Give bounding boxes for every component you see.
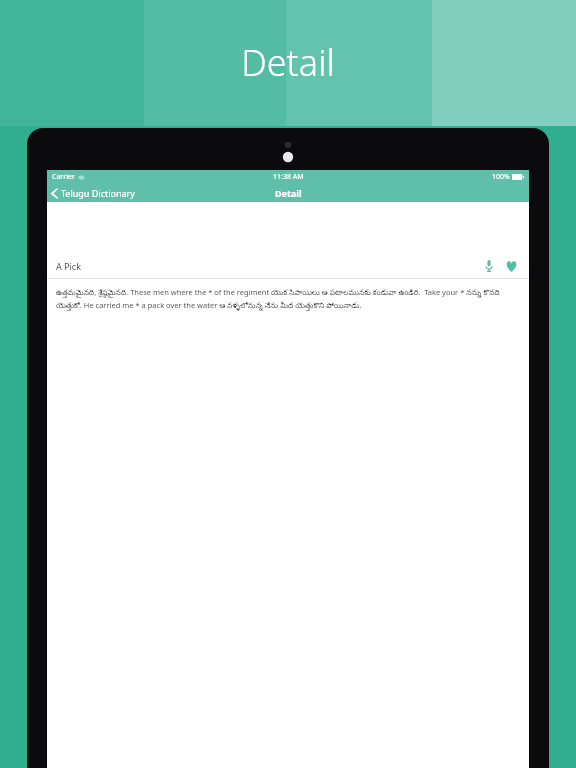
staticText: Carrier <box>52 172 75 182</box>
staticText: Detail <box>0 38 576 87</box>
staticText: Telugu Dictionary <box>61 187 135 199</box>
staticText: 11:38 AM <box>273 172 304 182</box>
staticText: Detail <box>275 187 302 199</box>
staticText: 100% <box>492 172 510 182</box>
button[interactable]: Favorite <box>502 257 520 275</box>
button[interactable]: Telugu Dictionary <box>47 185 141 201</box>
staticText: A Pick <box>56 260 81 272</box>
staticText: ఉత్తమమైనది, శ్రేష్ఠమైనది. These men wher… <box>56 287 520 311</box>
button[interactable]: Pronounce <box>480 257 498 275</box>
